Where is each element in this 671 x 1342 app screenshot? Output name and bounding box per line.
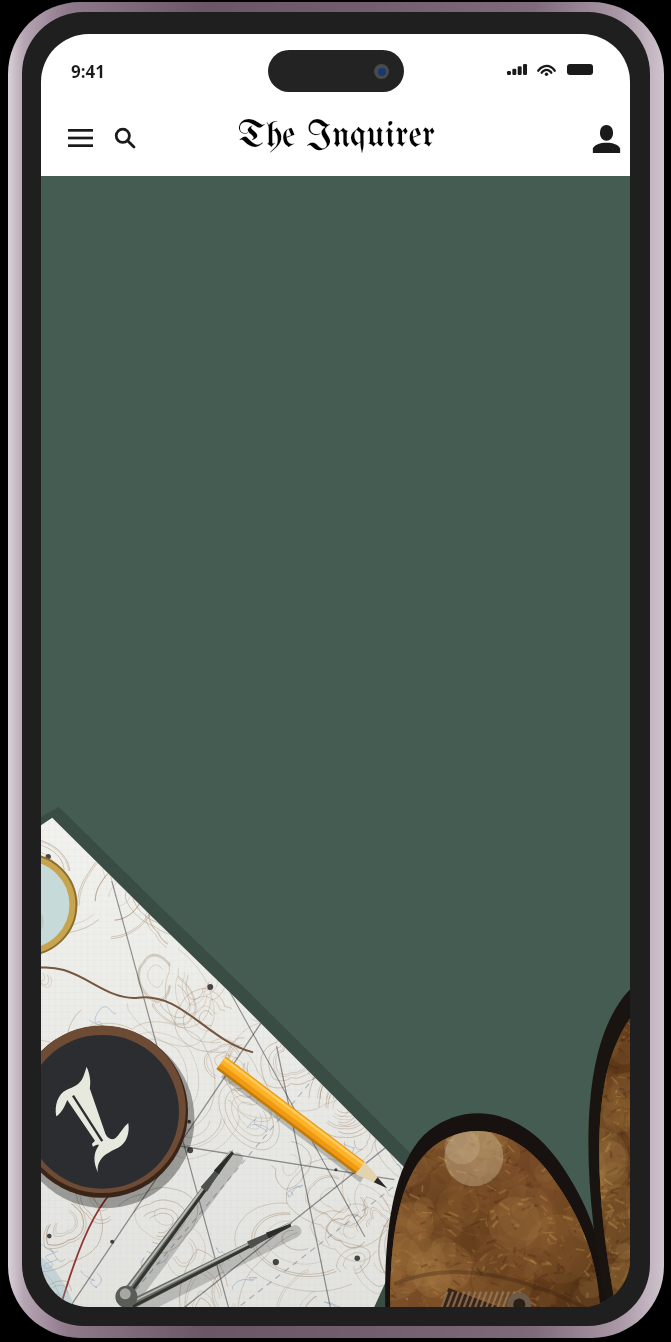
- button[interactable]: Search: [108, 121, 142, 155]
- button[interactable]: Account: [585, 118, 628, 160]
- staticText: 9:41: [71, 60, 105, 83]
- button[interactable]: Menu: [61, 120, 100, 156]
- staticText: The Inquirer: [238, 117, 436, 155]
